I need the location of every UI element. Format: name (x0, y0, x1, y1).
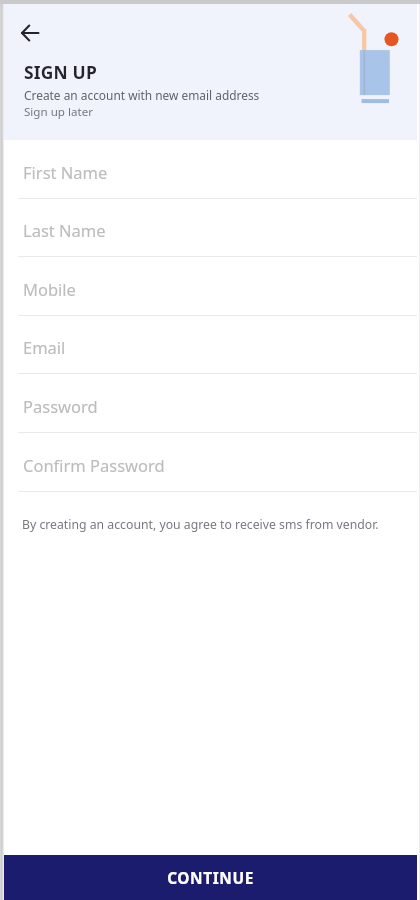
button[interactable]: CONTINUE (4, 855, 417, 900)
staticText: Last Name (23, 219, 106, 241)
staticText: Password (23, 395, 98, 417)
button[interactable]: Email (4, 315, 417, 374)
button[interactable]: Password (4, 374, 417, 433)
staticText: By creating an account, you agree to rec… (22, 516, 379, 533)
staticText: Create an account with new email address (24, 87, 260, 103)
staticText: First Name (23, 161, 108, 183)
staticText: Mobile (23, 278, 76, 300)
button[interactable]: Sign up later (24, 104, 93, 120)
button[interactable]: Confirm Password (4, 433, 417, 492)
staticText: Email (23, 336, 66, 358)
button[interactable]: Mobile (4, 257, 417, 316)
button[interactable]: Back (11, 20, 51, 46)
button[interactable]: First Name (4, 140, 417, 199)
staticText: CONTINUE (167, 868, 254, 889)
button[interactable]: Last Name (4, 198, 417, 257)
staticText: SIGN UP (24, 60, 97, 84)
staticText: Confirm Password (23, 454, 165, 476)
